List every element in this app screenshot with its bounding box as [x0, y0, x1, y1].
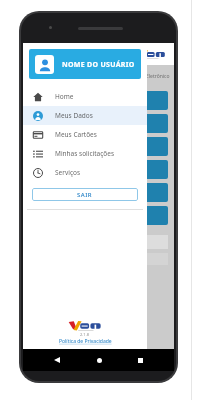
staticText: Meus Cartões: [55, 130, 97, 139]
button[interactable]: Back: [49, 352, 65, 368]
button[interactable]: Home: [91, 352, 107, 368]
button[interactable]: [29, 114, 168, 133]
staticText: Política de Privacidade: [59, 338, 112, 345]
staticText: NOME DO USUÁRIO: [62, 60, 135, 70]
button[interactable]: [29, 91, 168, 110]
button[interactable]: Meus Dados: [23, 106, 147, 125]
button[interactable]: Meus Cartões: [23, 125, 147, 144]
button[interactable]: Minhas solicitações: [23, 144, 147, 163]
button[interactable]: [29, 183, 168, 202]
button[interactable]: [29, 160, 168, 179]
button[interactable]: Serviços: [23, 163, 147, 182]
button[interactable]: [29, 253, 168, 265]
button[interactable]: SAIR: [32, 188, 138, 201]
staticText: Home: [55, 92, 74, 101]
staticText: SAIR: [77, 191, 93, 199]
button[interactable]: NOME DO USUÁRIO: [29, 49, 141, 79]
button[interactable]: Home: [23, 87, 147, 106]
button[interactable]: [29, 137, 168, 156]
staticText: Meus Dados: [55, 111, 93, 120]
button[interactable]: Meus Cartões: [29, 206, 168, 225]
staticText: 2.1.8: [80, 332, 90, 337]
button[interactable]: [29, 235, 168, 249]
staticText: Serviços: [55, 168, 81, 177]
staticText: Minhas solicitações: [55, 149, 115, 158]
staticText: Eletrônico: [146, 73, 170, 80]
button[interactable]: Recents: [132, 352, 148, 368]
button[interactable]: Política de Privacidade: [59, 338, 112, 345]
